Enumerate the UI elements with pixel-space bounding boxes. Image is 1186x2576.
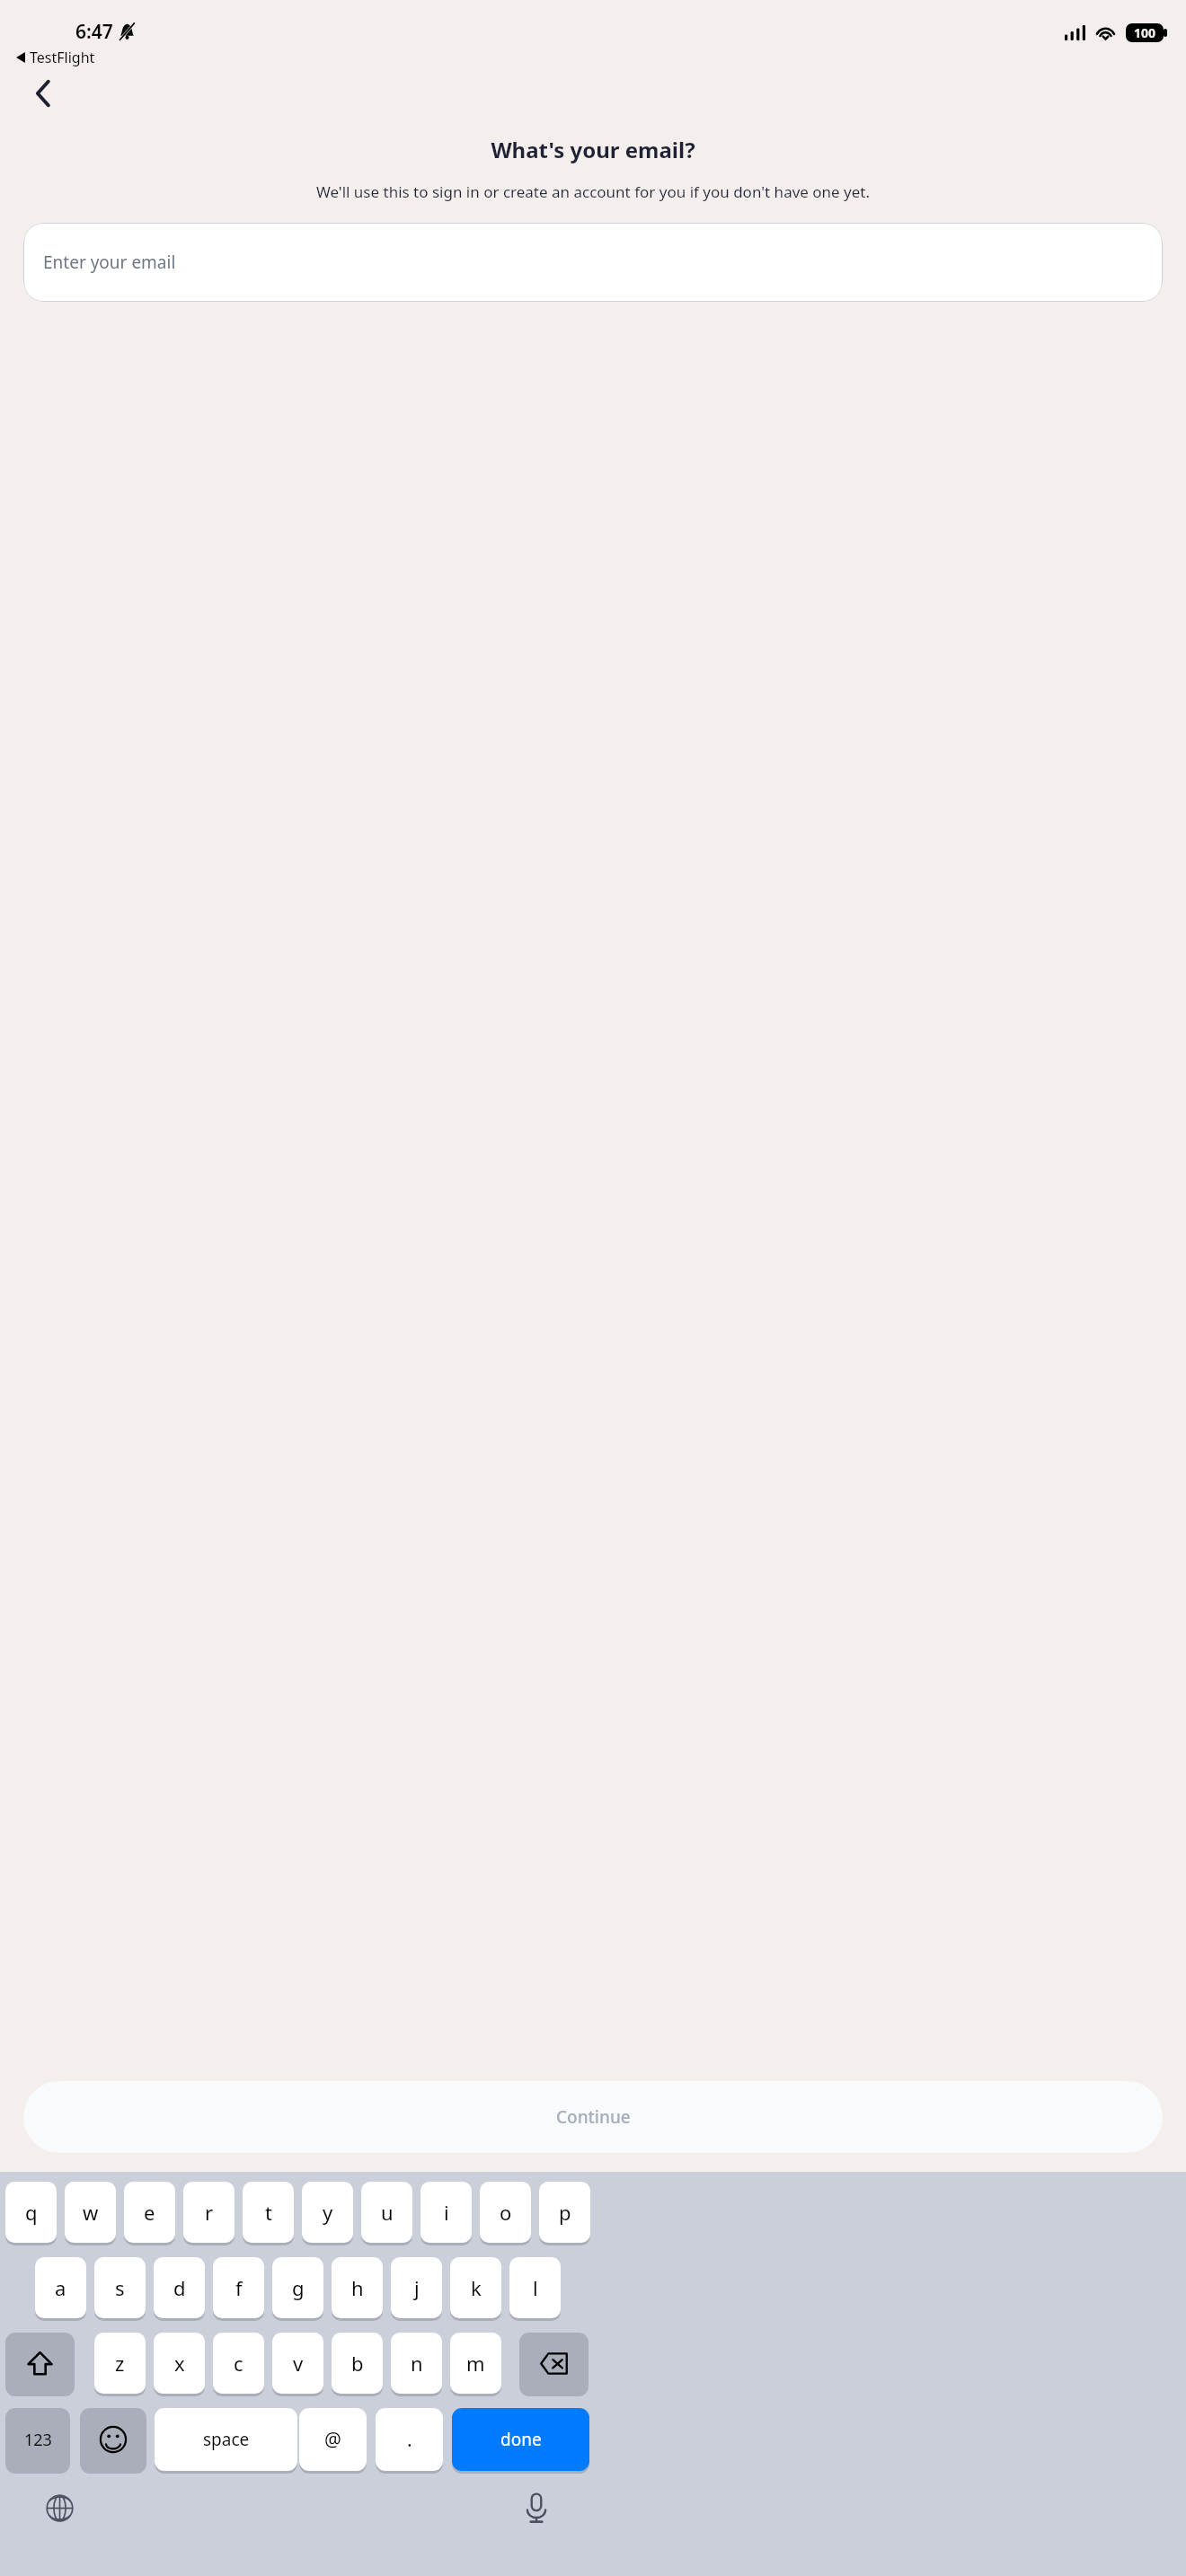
button[interactable]: l [509, 2257, 561, 2318]
button[interactable]: Back [16, 68, 70, 118]
button[interactable]: space [155, 2408, 297, 2471]
staticText: m [466, 2350, 485, 2377]
staticText: What's your email? [0, 135, 1186, 164]
button[interactable]: m [450, 2333, 501, 2394]
staticText: space [203, 2428, 250, 2451]
button[interactable]: Shift [5, 2333, 75, 2394]
staticText: q [25, 2199, 38, 2226]
button[interactable]: z [94, 2333, 146, 2394]
button[interactable]: Emoji [80, 2408, 146, 2471]
staticText: k [471, 2274, 482, 2301]
staticText: e [144, 2199, 155, 2226]
staticText: f [235, 2274, 243, 2301]
button[interactable]: k [450, 2257, 501, 2318]
button[interactable]: Continue [23, 2081, 1163, 2153]
staticText: a [55, 2274, 66, 2301]
staticText: u [381, 2199, 394, 2226]
staticText: z [115, 2350, 125, 2377]
staticText: j [414, 2274, 420, 2301]
button[interactable]: o [480, 2182, 531, 2243]
staticText: n [411, 2350, 423, 2377]
staticText: h [351, 2274, 364, 2301]
button[interactable]: w [65, 2182, 116, 2243]
staticText: s [115, 2274, 125, 2301]
button[interactable]: n [391, 2333, 442, 2394]
button[interactable]: g [272, 2257, 323, 2318]
staticText: d [173, 2274, 186, 2301]
button[interactable]: d [154, 2257, 205, 2318]
staticText: y [323, 2199, 333, 2226]
button[interactable]: done [452, 2408, 589, 2471]
button[interactable]: q [5, 2182, 57, 2243]
button[interactable]: u [361, 2182, 412, 2243]
button[interactable]: p [539, 2182, 590, 2243]
button[interactable]: s [94, 2257, 146, 2318]
staticText: v [293, 2350, 304, 2377]
staticText: b [351, 2350, 364, 2377]
staticText: . [407, 2427, 412, 2453]
button[interactable]: f [213, 2257, 264, 2318]
button[interactable]: a [35, 2257, 86, 2318]
staticText: @ [324, 2427, 341, 2453]
button[interactable]: c [213, 2333, 264, 2394]
staticText: o [500, 2199, 512, 2226]
button[interactable]: r [183, 2182, 235, 2243]
staticText: g [292, 2274, 305, 2301]
staticText: p [559, 2199, 571, 2226]
staticText: c [234, 2350, 243, 2377]
button[interactable]: i [420, 2182, 472, 2243]
staticText: r [205, 2199, 214, 2226]
button[interactable]: . [376, 2408, 443, 2471]
staticText: i [444, 2199, 449, 2226]
button[interactable]: t [243, 2182, 294, 2243]
staticText: w [83, 2199, 99, 2226]
staticText: l [533, 2274, 538, 2301]
staticText: t [265, 2199, 272, 2226]
staticText: 123 [24, 2429, 52, 2451]
button[interactable]: h [332, 2257, 383, 2318]
button[interactable]: Dictation [518, 2489, 555, 2527]
button[interactable]: 123 [5, 2408, 70, 2471]
button[interactable]: @ [299, 2408, 367, 2471]
button[interactable]: x [154, 2333, 205, 2394]
staticText: 100 [1134, 24, 1156, 41]
button[interactable]: v [272, 2333, 323, 2394]
button[interactable]: Enter your email [23, 223, 1163, 302]
button[interactable]: e [124, 2182, 175, 2243]
button[interactable]: Change keyboard [40, 2489, 78, 2527]
button[interactable]: j [391, 2257, 442, 2318]
button[interactable]: b [332, 2333, 383, 2394]
staticText: x [174, 2350, 185, 2377]
staticText: We'll use this to sign in or create an a… [23, 181, 1163, 202]
staticText: TestFlight [30, 48, 95, 67]
staticText: 6:47 [75, 19, 113, 45]
button[interactable]: y [302, 2182, 353, 2243]
staticText: Continue [556, 2105, 631, 2129]
button[interactable]: Backspace [519, 2333, 589, 2394]
staticText: Enter your email [43, 251, 176, 274]
staticText: done [500, 2428, 542, 2451]
